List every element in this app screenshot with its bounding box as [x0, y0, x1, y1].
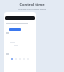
button[interactable]: [5, 16, 35, 20]
staticText: manage your screen usage: [18, 8, 46, 11]
button[interactable]: [9, 28, 21, 31]
staticText: Control time: [19, 2, 45, 7]
